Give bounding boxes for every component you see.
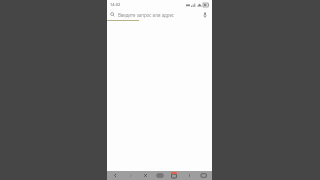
button[interactable]: Вперёд: [124, 171, 136, 180]
staticText: 14:02: [110, 2, 121, 7]
button[interactable]: Вкладки: [168, 171, 180, 180]
button[interactable]: Закладки: [154, 171, 166, 180]
staticText: Введите запрос или адрес: [118, 12, 199, 18]
button[interactable]: Профиль: [198, 171, 210, 180]
button[interactable]: Меню: [183, 171, 195, 180]
button[interactable]: Остановить: [139, 171, 151, 180]
button[interactable]: Введите запрос или адрес: [107, 9, 212, 20]
button[interactable]: Назад: [109, 171, 121, 180]
button[interactable]: Голосовой поиск: [201, 11, 209, 19]
